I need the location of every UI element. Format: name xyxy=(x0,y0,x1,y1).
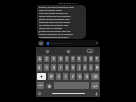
button[interactable]: J xyxy=(77,64,81,71)
staticText: V xyxy=(72,75,74,79)
button[interactable]: Backspace xyxy=(91,73,99,80)
staticText: U xyxy=(78,57,80,61)
staticText: mais j'ai changé d'avis. xyxy=(39,9,63,12)
button[interactable]: N xyxy=(84,73,89,80)
staticText: Je veux pas te blesser c'est pas xyxy=(39,30,71,33)
button[interactable]: Change language xyxy=(46,82,52,89)
staticText: X xyxy=(58,75,60,79)
button[interactable]: Message texte - SMS xyxy=(46,40,99,46)
staticText: Écoute, je t'avais proposé de venir xyxy=(39,6,74,9)
staticText: M xyxy=(96,66,99,70)
button[interactable]: W xyxy=(48,73,54,80)
staticText: Q xyxy=(38,66,41,70)
staticText: Message texte - SMS xyxy=(50,42,72,45)
button[interactable]: I xyxy=(83,56,87,62)
staticText: J'avais besoin de prendre mes xyxy=(39,18,70,21)
staticText: N xyxy=(86,75,88,79)
button[interactable]: A xyxy=(37,56,42,62)
button[interactable]: Shift xyxy=(37,73,46,80)
button[interactable]: M xyxy=(95,64,99,71)
button[interactable]: P xyxy=(95,56,99,62)
staticText: C xyxy=(65,75,67,79)
staticText: W xyxy=(50,75,53,79)
staticText: I xyxy=(85,57,86,61)
staticText: même dans la relation. xyxy=(39,27,63,30)
button[interactable]: Écoute, je t'avais proposé de venir xyxy=(37,5,86,39)
button[interactable]: Y xyxy=(71,56,75,62)
staticText: Z xyxy=(46,57,48,61)
staticText: besoin de temps pour réfléchir. xyxy=(39,15,71,18)
staticText: E xyxy=(53,57,55,61)
staticText: G xyxy=(66,66,68,70)
button[interactable]: Emoji xyxy=(36,47,58,55)
button[interactable]: X xyxy=(56,73,61,80)
button[interactable]: R xyxy=(58,56,63,62)
button[interactable]: T xyxy=(65,56,69,62)
staticText: B xyxy=(79,75,81,79)
staticText: ?123 xyxy=(38,84,43,87)
button[interactable]: Stickers xyxy=(58,47,79,55)
staticText: H xyxy=(72,66,74,70)
staticText: aujourd'hui 10:12 xyxy=(58,1,78,4)
staticText: C'est pas contre toi mais j'ai xyxy=(39,12,68,15)
button[interactable]: Q xyxy=(37,64,42,71)
button[interactable]: F xyxy=(58,64,63,71)
button[interactable]: Enter xyxy=(91,82,99,89)
button[interactable]: E xyxy=(51,56,56,62)
staticText: et j'avais dans les salles alors xyxy=(39,36,69,38)
staticText: GIF xyxy=(89,50,92,53)
button[interactable]: V xyxy=(70,73,75,80)
button[interactable]: Z xyxy=(44,56,49,62)
button[interactable]: U xyxy=(77,56,81,62)
staticText: T xyxy=(66,57,68,61)
button[interactable]: H xyxy=(71,64,75,71)
staticText: J xyxy=(79,66,80,70)
button[interactable]: K xyxy=(83,64,87,71)
button[interactable]: Emoji keyboard xyxy=(36,90,43,97)
button[interactable]: B xyxy=(77,73,82,80)
button[interactable]: G xyxy=(65,64,69,71)
button[interactable]: D xyxy=(51,64,56,71)
staticText: distances avec toi parce que je xyxy=(39,21,71,24)
staticText: R xyxy=(60,57,62,61)
staticText: K xyxy=(84,66,86,70)
staticText: ne sentais pas vraiment moi- xyxy=(39,24,69,27)
button[interactable]: S xyxy=(44,64,49,71)
staticText: L xyxy=(90,66,92,70)
button[interactable]: Add attachment xyxy=(38,40,44,46)
staticText: D xyxy=(53,66,55,70)
staticText: O xyxy=(90,57,93,61)
staticText: facile ce que je vis en ce moment xyxy=(39,33,73,36)
staticText: P xyxy=(96,57,98,61)
button[interactable]: ?123 xyxy=(37,82,44,89)
button[interactable]: L xyxy=(89,64,93,71)
staticText: S xyxy=(46,66,48,70)
button[interactable]: O xyxy=(89,56,93,62)
button[interactable]: GIF xyxy=(79,47,100,55)
button[interactable]: C xyxy=(63,73,68,80)
staticText: F xyxy=(60,66,62,70)
button[interactable]: Voice input xyxy=(93,90,100,97)
staticText: Y xyxy=(72,57,74,61)
staticText: A xyxy=(39,57,41,61)
